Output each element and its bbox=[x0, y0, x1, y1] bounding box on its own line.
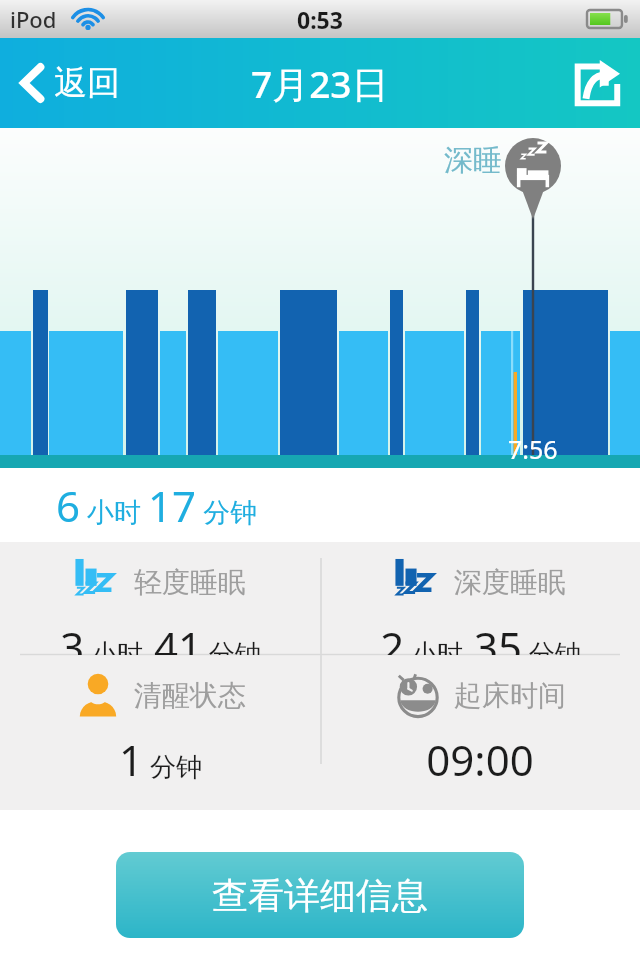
button[interactable]: 查看详细信息 bbox=[116, 852, 524, 938]
button[interactable]: 起床时间 bbox=[320, 655, 640, 810]
staticText: 轻度睡眠 bbox=[134, 565, 246, 600]
staticText: 深睡 bbox=[444, 142, 502, 179]
button[interactable]: 深度睡眠 bbox=[320, 542, 640, 655]
staticText: 查看详细信息 bbox=[212, 873, 428, 918]
button[interactable]: 轻度睡眠 bbox=[0, 542, 320, 655]
staticText: 09:00 bbox=[426, 731, 534, 788]
staticText: 7月23日 bbox=[251, 58, 389, 109]
staticText: 6 小时 17 分钟 bbox=[56, 477, 258, 534]
staticText: 3 小时 41 分钟 bbox=[60, 618, 261, 655]
staticText: 1 分钟 bbox=[119, 731, 202, 788]
staticText: 返回 bbox=[54, 62, 120, 104]
staticText: 0:53 bbox=[297, 4, 343, 35]
staticText: 清醒状态 bbox=[134, 678, 246, 713]
staticText: 2 小时 35 分钟 bbox=[380, 618, 581, 655]
button[interactable]: 清醒状态 bbox=[0, 655, 320, 810]
button[interactable]: 返回 bbox=[0, 38, 136, 128]
staticText: 深度睡眠 bbox=[454, 565, 566, 600]
button[interactable]: Share bbox=[554, 38, 640, 128]
staticText: 起床时间 bbox=[454, 678, 566, 713]
staticText: 7:56 bbox=[508, 432, 558, 466]
staticText: iPod bbox=[10, 4, 57, 34]
